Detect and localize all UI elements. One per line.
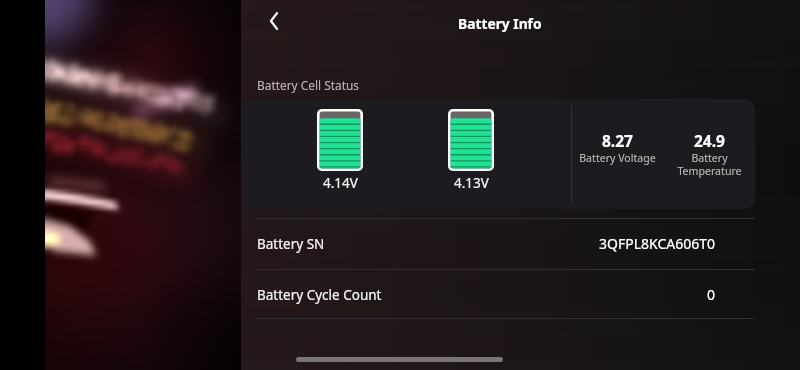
staticText: Battery Cell Status	[257, 77, 360, 93]
button[interactable]: Battery SN	[241, 218, 755, 269]
staticText: 4.14V	[323, 174, 358, 192]
staticText: 3QFPL8KCA606T0	[599, 234, 716, 253]
staticText: 24.9	[694, 130, 725, 151]
button[interactable]: Back	[257, 4, 291, 38]
staticText: Battery Cycle Count	[257, 286, 382, 304]
staticText: Battery Voltage	[579, 151, 656, 165]
staticText: 4.13V	[454, 174, 489, 192]
staticText: 8.27	[602, 130, 633, 151]
staticText: Battery SN	[257, 235, 325, 253]
staticText: Battery Info	[458, 14, 542, 33]
staticText: Battery Temperature	[677, 151, 742, 178]
staticText: 0	[707, 285, 716, 304]
button[interactable]: Battery Cycle Count	[241, 269, 755, 320]
